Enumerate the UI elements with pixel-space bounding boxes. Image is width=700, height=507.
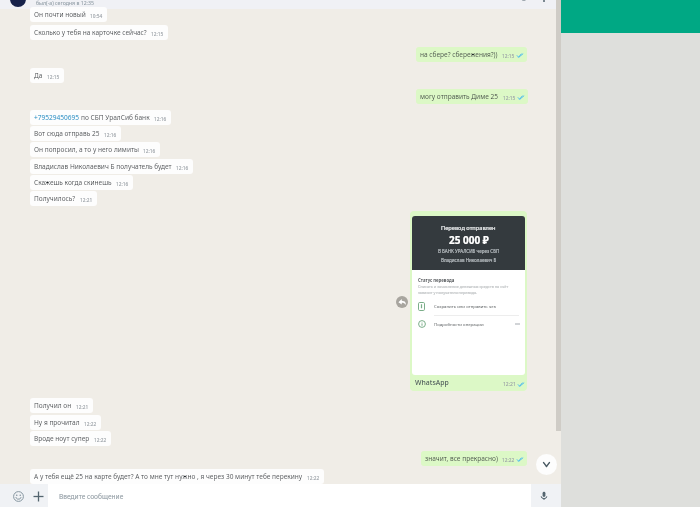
staticText: 12:15	[47, 74, 60, 81]
button[interactable]: Скажешь когда скинешь	[30, 175, 133, 190]
staticText: Владислав Николаевич Б	[441, 257, 497, 263]
staticText: А у тебя ещё 25 на карте будет? А то мне…	[34, 472, 303, 481]
staticText: Подробности операции	[434, 321, 484, 327]
staticText: Владислав Николаевич Б получатель будет	[34, 162, 172, 171]
staticText: Списать и зачисление денежных средств на…	[418, 284, 509, 295]
staticText: Введите сообщение	[59, 492, 124, 501]
button[interactable]: +79529450695	[30, 110, 171, 125]
staticText: 12:21	[80, 197, 93, 204]
staticText: Ну я прочитал	[34, 418, 80, 427]
staticText: 12:16	[116, 181, 129, 188]
staticText: 12:15	[151, 31, 164, 38]
staticText: 12:21	[503, 381, 516, 388]
button[interactable]: Ну я прочитал	[30, 415, 101, 430]
button[interactable]: Search	[518, 0, 530, 3]
staticText: 12:16	[154, 116, 167, 123]
button[interactable]: могу отправить Диме 25	[416, 89, 528, 104]
button[interactable]: на сбере? сбережения?))	[416, 47, 527, 62]
button[interactable]: Получилось?	[30, 191, 97, 206]
staticText: Получил он	[34, 401, 72, 410]
staticText: Перевод отправлен	[441, 224, 496, 232]
staticText: +79529450695	[34, 113, 81, 122]
staticText: Да	[34, 71, 43, 80]
staticText: был(-а) сегодня в 12:35	[36, 0, 94, 6]
button[interactable]: Сколько у тебя на карточке сейчас?	[30, 25, 168, 40]
button[interactable]: Владислав Николаевич Б получатель будет	[30, 159, 193, 174]
button[interactable]: Да	[30, 68, 64, 83]
button[interactable]: Сохранить или отправить чек	[412, 298, 525, 314]
staticText: Статус перевода	[418, 277, 455, 283]
staticText: 12:22	[307, 475, 320, 482]
staticText: 12:15	[503, 95, 516, 102]
staticText: В БАНК УРАЛСИБ через СБП	[438, 248, 500, 254]
button[interactable]: Chat header	[0, 0, 561, 9]
button[interactable]: Перевод отправлен	[410, 211, 527, 391]
staticText: WhatsApp	[415, 378, 449, 387]
button[interactable]: Он почти новый	[30, 7, 107, 22]
staticText: могу отправить Диме 25	[420, 92, 499, 101]
staticText: Вот сюда отправь 25	[34, 129, 100, 138]
staticText: 12:16	[104, 132, 117, 139]
staticText: Сохранить или отправить чек	[434, 303, 496, 309]
button[interactable]: Подробности операции	[412, 316, 525, 332]
staticText: Он почти новый	[34, 10, 86, 19]
staticText: по СБП УралСиб банк	[81, 113, 150, 122]
button[interactable]: Voice message	[533, 485, 555, 507]
button[interactable]: Вот сюда отправь 25	[30, 126, 121, 141]
button[interactable]: Он попросил, а то у него лимиты	[30, 142, 160, 157]
staticText: 25 000 ₽	[449, 233, 489, 247]
staticText: Вроде ноут супер	[34, 434, 90, 443]
staticText: Скажешь когда скинешь	[34, 178, 112, 187]
button[interactable]: Attach	[27, 485, 49, 507]
staticText: 10:54	[90, 13, 103, 20]
button[interactable]: Scroll to bottom	[536, 454, 557, 475]
staticText: Сколько у тебя на карточке сейчас?	[34, 28, 147, 37]
staticText: значит, все прекрасно)	[425, 454, 498, 463]
button[interactable]: Menu	[538, 0, 550, 3]
button[interactable]: Вроде ноут супер	[30, 431, 111, 446]
button[interactable]: Emoji	[7, 485, 29, 507]
button[interactable]: Получил он	[30, 398, 93, 413]
staticText: на сбере? сбережения?))	[420, 50, 498, 59]
staticText: 12:22	[84, 421, 97, 428]
staticText: 12:16	[143, 148, 156, 155]
staticText: 12:15	[502, 53, 515, 60]
staticText: 12:22	[502, 457, 515, 464]
staticText: Он попросил, а то у него лимиты	[34, 145, 139, 154]
staticText: 12:22	[94, 437, 107, 444]
staticText: Получилось?	[34, 194, 76, 203]
staticText: 12:21	[76, 404, 89, 411]
staticText: 12:16	[176, 165, 189, 172]
button[interactable]: А у тебя ещё 25 на карте будет? А то мне…	[30, 469, 324, 484]
button[interactable]: Forward	[396, 296, 408, 308]
button[interactable]: значит, все прекрасно)	[421, 451, 527, 466]
